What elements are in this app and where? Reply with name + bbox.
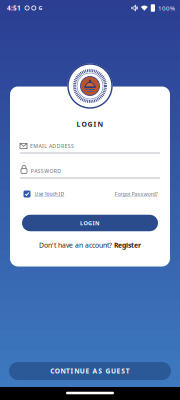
staticText: LOGIN bbox=[76, 119, 103, 129]
button[interactable]: Don't have an account? Register bbox=[39, 240, 141, 249]
staticText: Use Touch ID bbox=[34, 191, 64, 197]
button[interactable]: Use Touch ID bbox=[23, 190, 64, 197]
staticText: 100% bbox=[158, 4, 175, 12]
button[interactable]: LOGIN bbox=[22, 215, 158, 231]
staticText: LOGIN bbox=[80, 219, 100, 227]
staticText: Forgot Password? bbox=[114, 190, 157, 198]
staticText: 4:51 bbox=[7, 4, 21, 12]
staticText: G bbox=[38, 4, 42, 12]
staticText: CONTINUE AS GUEST bbox=[50, 366, 130, 376]
button[interactable]: Password bbox=[18, 164, 162, 179]
staticText: PASSWORD bbox=[31, 167, 61, 175]
button[interactable]: Forgot Password? bbox=[114, 190, 157, 198]
button[interactable]: Email Address bbox=[18, 139, 162, 154]
staticText: EMAIL ADDRESS bbox=[30, 142, 74, 150]
button[interactable]: CONTINUE AS GUEST bbox=[9, 362, 171, 380]
staticText: Don't have an account? Register bbox=[39, 240, 141, 249]
